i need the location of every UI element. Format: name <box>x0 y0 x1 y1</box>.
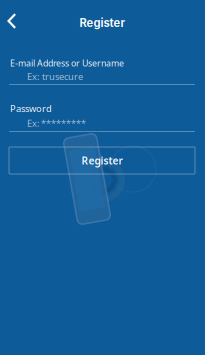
staticText: E-mail Address or Username <box>10 57 124 69</box>
staticText: Ex: trusecure <box>27 70 83 83</box>
staticText: Password <box>10 102 52 115</box>
button[interactable]: Back <box>0 6 25 36</box>
staticText: Register <box>81 154 122 167</box>
staticText: Register <box>79 16 125 30</box>
button[interactable]: Register <box>9 147 195 174</box>
staticText: Ex: ********* <box>27 117 86 129</box>
